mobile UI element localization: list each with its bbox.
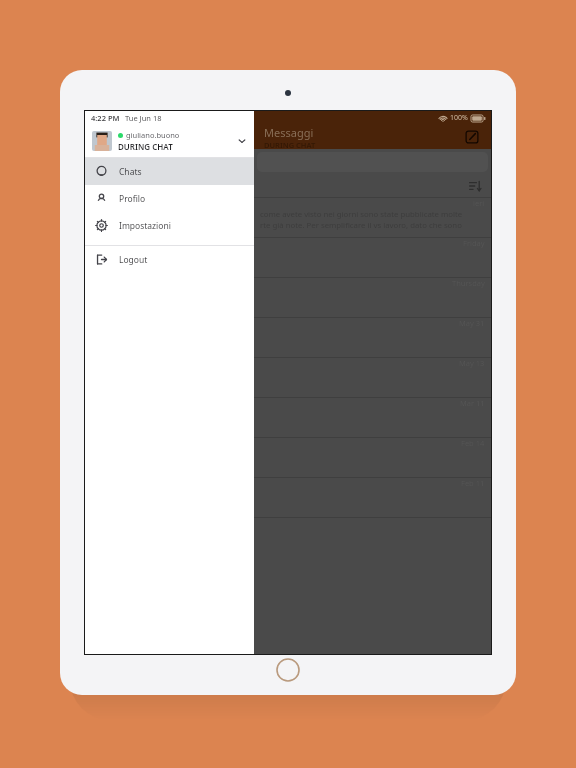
- staticText: 4:22 PM: [91, 113, 120, 123]
- staticText: 100%: [450, 113, 468, 123]
- button[interactable]: Compose new message: [463, 128, 481, 146]
- staticText: giuliano.buono: [126, 130, 180, 140]
- button[interactable]: Logout: [85, 246, 254, 273]
- button[interactable]: Chats: [85, 158, 254, 185]
- staticText: Tue Jun 18: [125, 113, 162, 123]
- staticText: DURING CHAT: [118, 141, 173, 152]
- staticText: Logout: [119, 254, 148, 266]
- staticText: DURING CHAT: [264, 140, 316, 149]
- staticText: Profilo: [119, 193, 146, 205]
- button[interactable]: Impostazioni: [85, 212, 254, 239]
- staticText: Chats: [119, 166, 142, 178]
- staticText: Impostazioni: [119, 220, 171, 232]
- staticText: come avete visto nei giorni sono state p…: [260, 209, 485, 220]
- staticText: Messaggi: [264, 125, 314, 140]
- button[interactable]: Home: [275, 657, 301, 683]
- button[interactable]: giuliano.buono: [85, 125, 254, 157]
- button[interactable]: Sort: [467, 178, 483, 194]
- button[interactable]: Profilo: [85, 185, 254, 212]
